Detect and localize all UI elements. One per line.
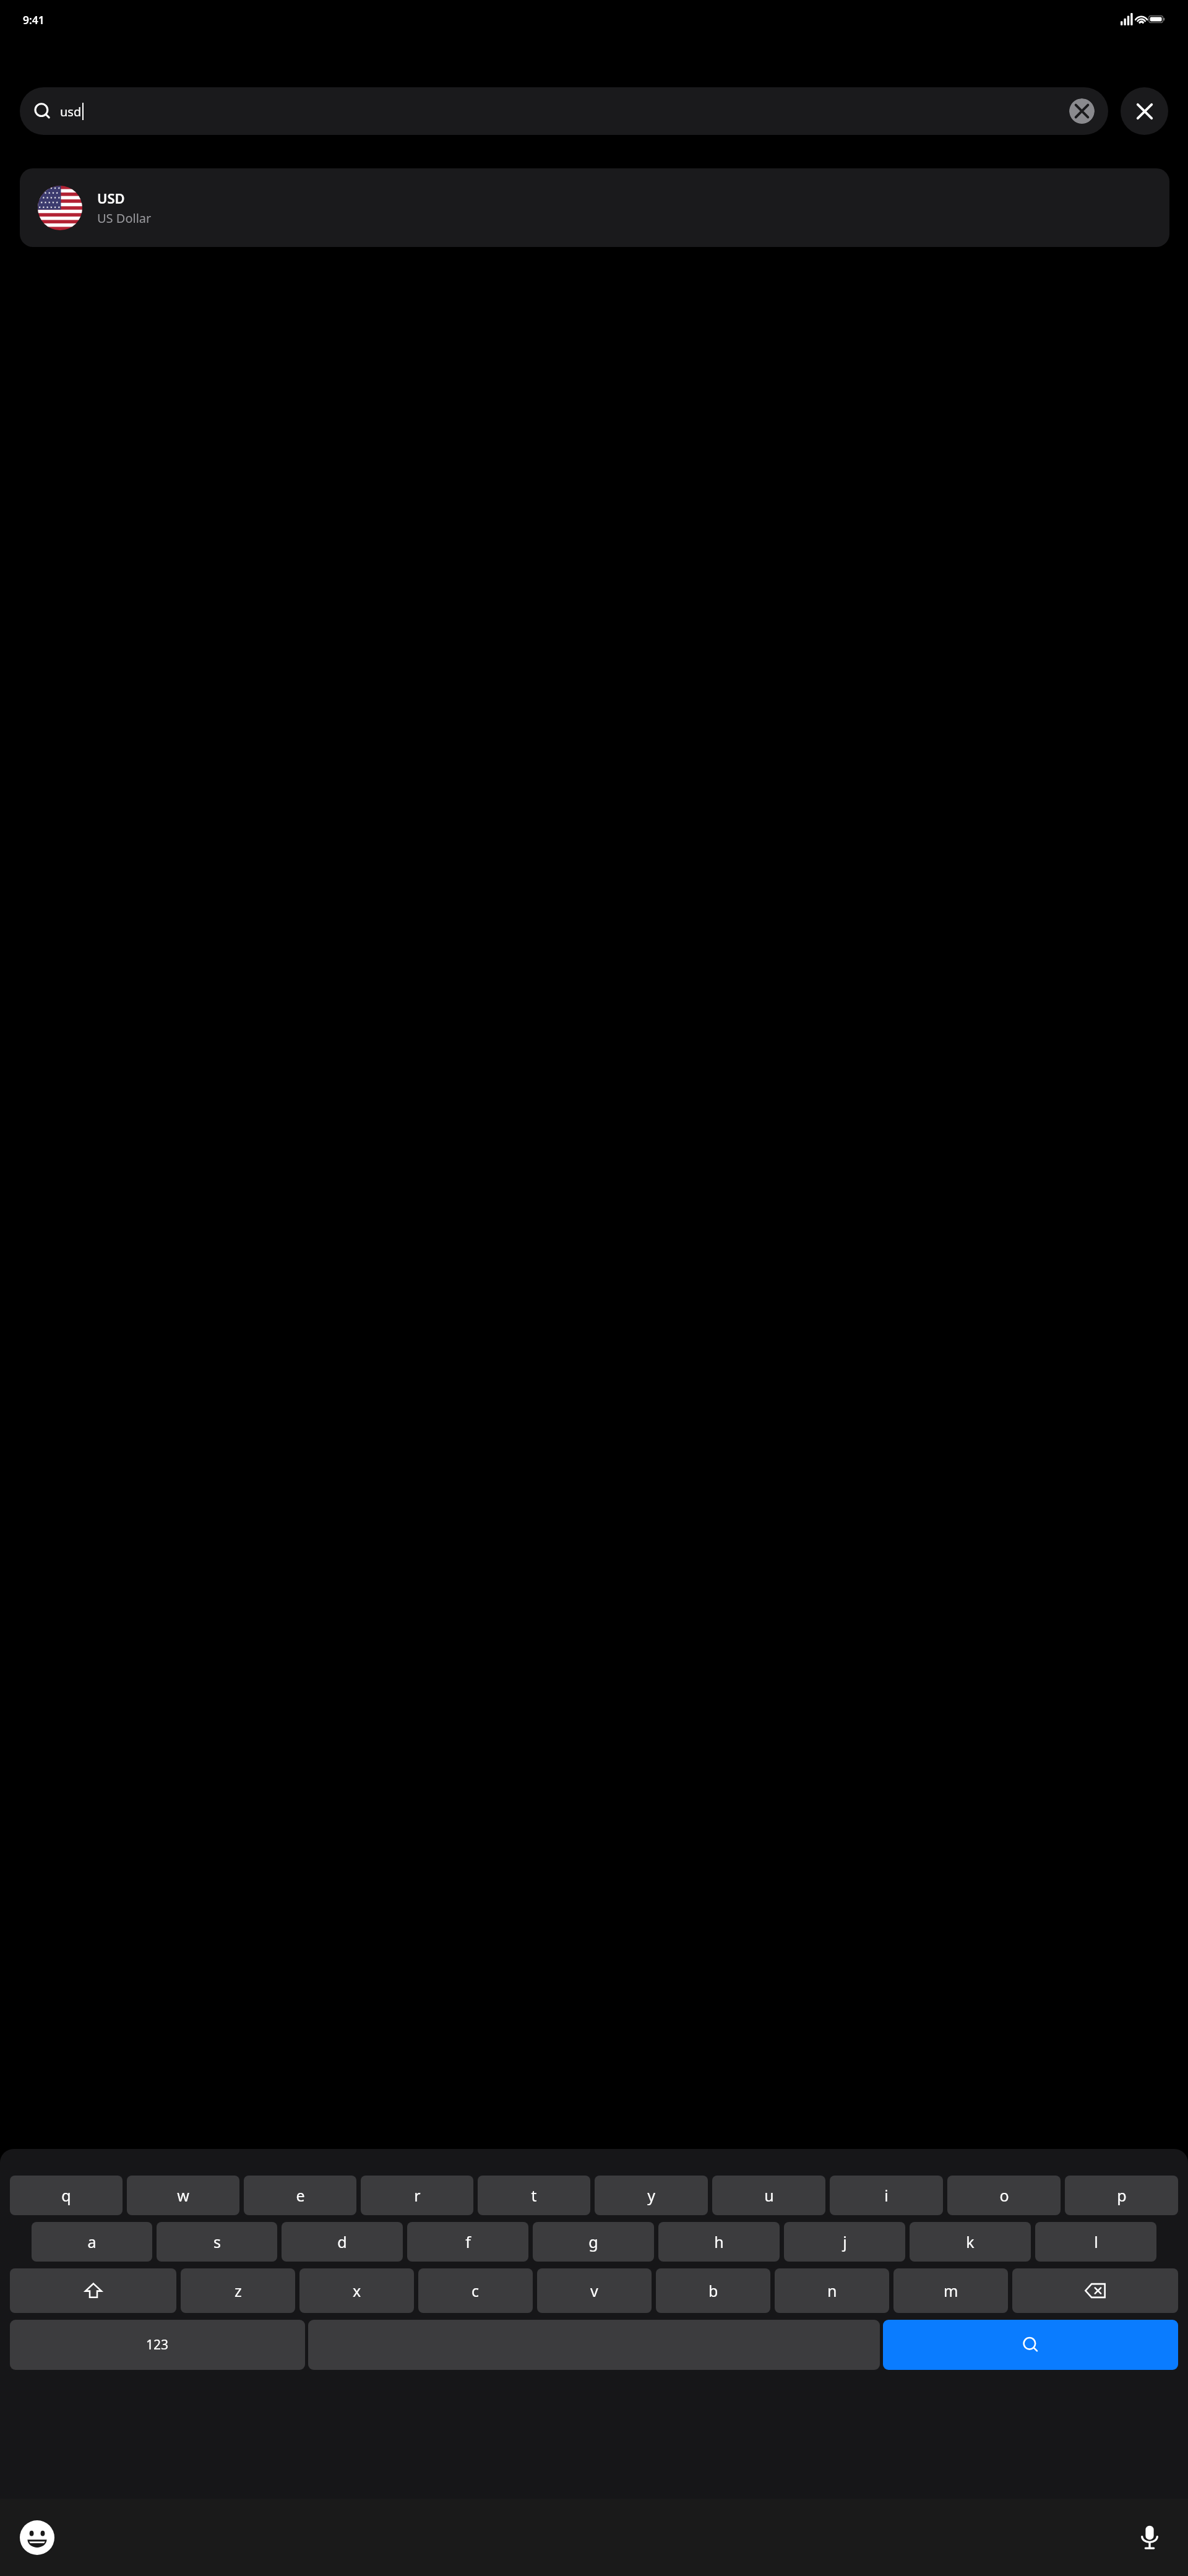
staticText: usd [60, 103, 82, 120]
staticText: USD [97, 189, 125, 207]
button[interactable]: l [1035, 2222, 1156, 2262]
staticText: k [966, 2231, 975, 2252]
staticText: v [590, 2280, 598, 2301]
staticText: w [177, 2185, 189, 2206]
button[interactable]: Clear text [1069, 98, 1095, 124]
button[interactable]: v [537, 2268, 652, 2313]
staticText: q [61, 2185, 71, 2206]
button[interactable]: j [784, 2222, 905, 2262]
staticText: a [87, 2231, 97, 2252]
button[interactable]: b [656, 2268, 770, 2313]
button[interactable]: d [282, 2222, 403, 2262]
button[interactable]: q [10, 2176, 123, 2215]
staticText: 123 [146, 2336, 169, 2354]
staticText: u [764, 2185, 774, 2206]
button[interactable]: r [361, 2176, 473, 2215]
staticText: m [944, 2280, 958, 2301]
button[interactable]: u [712, 2176, 825, 2215]
staticText: l [1094, 2231, 1098, 2252]
button[interactable]: e [244, 2176, 356, 2215]
staticText: x [353, 2280, 361, 2301]
button[interactable]: g [533, 2222, 654, 2262]
button[interactable]: x [299, 2268, 414, 2313]
button[interactable]: k [910, 2222, 1031, 2262]
staticText: t [531, 2185, 537, 2206]
staticText: g [588, 2231, 598, 2252]
staticText: i [884, 2185, 889, 2206]
button[interactable]: Shift [10, 2268, 176, 2313]
button[interactable]: c [418, 2268, 533, 2313]
button[interactable]: s [157, 2222, 277, 2262]
button[interactable]: i [830, 2176, 943, 2215]
staticText: h [714, 2231, 724, 2252]
button[interactable]: o [947, 2176, 1061, 2215]
staticText: US Dollar [97, 210, 152, 227]
staticText: y [647, 2185, 655, 2206]
button[interactable]: n [775, 2268, 889, 2313]
staticText: r [414, 2185, 421, 2206]
staticText: j [843, 2231, 847, 2252]
staticText: z [235, 2280, 242, 2301]
staticText: p [1117, 2185, 1127, 2206]
staticText: s [213, 2231, 221, 2252]
button[interactable]: Voice input [1127, 2515, 1172, 2560]
button[interactable]: Close search [1121, 87, 1168, 135]
staticText: 9:41 [23, 12, 45, 27]
button[interactable]: z [181, 2268, 295, 2313]
button[interactable]: Search [883, 2320, 1178, 2370]
button[interactable]: USD [20, 168, 1169, 247]
button[interactable]: 123 [10, 2320, 305, 2370]
button[interactable]: a [32, 2222, 152, 2262]
button[interactable]: Emoji [15, 2515, 59, 2560]
staticText: c [471, 2280, 480, 2301]
button[interactable]: f [407, 2222, 528, 2262]
button[interactable]: y [595, 2176, 708, 2215]
button[interactable]: h [658, 2222, 780, 2262]
staticText: f [465, 2231, 471, 2252]
staticText: b [708, 2280, 718, 2301]
button[interactable]: m [893, 2268, 1008, 2313]
button[interactable]: Backspace [1012, 2268, 1178, 2313]
staticText: d [337, 2231, 347, 2252]
staticText: n [827, 2280, 837, 2301]
staticText: o [999, 2185, 1009, 2206]
button[interactable]: usd [20, 87, 1108, 135]
button[interactable]: p [1065, 2176, 1178, 2215]
button[interactable]: w [127, 2176, 239, 2215]
staticText: e [296, 2185, 305, 2206]
button[interactable]: t [478, 2176, 590, 2215]
